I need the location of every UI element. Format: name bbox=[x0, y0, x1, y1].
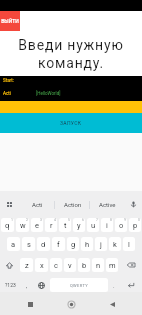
staticText: Active bbox=[99, 201, 116, 208]
button[interactable]: a bbox=[7, 237, 20, 251]
button[interactable]: Period bbox=[109, 278, 119, 292]
staticText: ВЫЙТИ bbox=[1, 18, 19, 24]
staticText: o bbox=[119, 221, 124, 230]
staticText: f bbox=[57, 240, 60, 249]
button[interactable]: Acti bbox=[19, 191, 55, 218]
staticText: ?123 bbox=[5, 282, 16, 288]
staticText: v bbox=[68, 261, 72, 270]
button[interactable]: g bbox=[67, 237, 79, 251]
staticText: ЗАПУСК bbox=[60, 120, 82, 126]
staticText: 4 bbox=[54, 218, 56, 222]
staticText: 0 bbox=[138, 218, 140, 222]
button[interactable]: Home bbox=[60, 293, 82, 315]
staticText: Введи нужную команду. bbox=[14, 37, 128, 72]
staticText: 1 bbox=[11, 218, 13, 222]
staticText: g bbox=[71, 240, 76, 249]
staticText: h bbox=[85, 240, 90, 249]
staticText: p bbox=[133, 221, 138, 230]
button[interactable]: 3 bbox=[31, 218, 43, 232]
staticText: e bbox=[35, 221, 39, 230]
button[interactable]: Action bbox=[55, 191, 90, 218]
staticText: . bbox=[113, 282, 115, 289]
button[interactable]: Switch language bbox=[35, 278, 48, 292]
staticText: 8 bbox=[110, 218, 112, 222]
staticText: 9 bbox=[124, 218, 126, 222]
button[interactable]: 6 bbox=[73, 218, 85, 232]
staticText: t bbox=[64, 221, 67, 230]
button[interactable]: ВЫЙТИ bbox=[0, 11, 20, 31]
staticText: s bbox=[27, 240, 31, 249]
staticText: x bbox=[40, 261, 44, 270]
button[interactable]: 9 bbox=[115, 218, 127, 232]
button[interactable]: d bbox=[37, 237, 50, 251]
staticText: a bbox=[11, 240, 16, 249]
button[interactable]: Apps bbox=[0, 191, 19, 218]
staticText: , bbox=[26, 282, 28, 289]
button[interactable]: 0 bbox=[129, 218, 141, 232]
button[interactable]: h bbox=[81, 237, 93, 251]
staticText: 6 bbox=[82, 218, 84, 222]
button[interactable]: 1 bbox=[1, 218, 14, 232]
button[interactable]: Backspace bbox=[120, 258, 141, 272]
staticText: Acti bbox=[3, 91, 11, 96]
button[interactable]: Back bbox=[101, 293, 123, 315]
staticText: l bbox=[128, 240, 130, 249]
button[interactable]: s bbox=[22, 237, 35, 251]
button[interactable]: Active bbox=[90, 191, 125, 218]
button[interactable]: k bbox=[109, 237, 121, 251]
staticText: Start: bbox=[3, 78, 14, 83]
staticText: b bbox=[82, 261, 87, 270]
staticText: r bbox=[50, 221, 53, 230]
staticText: 5 bbox=[68, 218, 70, 222]
button[interactable]: 2 bbox=[16, 218, 29, 232]
button[interactable]: ЗАПУСК bbox=[0, 113, 142, 133]
button[interactable]: 5 bbox=[59, 218, 71, 232]
button[interactable]: 7 bbox=[87, 218, 99, 232]
button[interactable]: b bbox=[78, 258, 90, 272]
button[interactable]: ?123 bbox=[1, 278, 19, 292]
button[interactable]: Comma bbox=[20, 278, 34, 292]
button[interactable]: QWERTY bbox=[50, 278, 108, 292]
staticText: w bbox=[20, 221, 26, 230]
staticText: Acti bbox=[32, 201, 43, 208]
staticText: [HelloWorld] bbox=[36, 91, 61, 96]
staticText: y bbox=[77, 221, 81, 230]
staticText: j bbox=[100, 240, 102, 249]
staticText: 7 bbox=[96, 218, 98, 222]
staticText: q bbox=[5, 221, 10, 230]
staticText: 2 bbox=[26, 218, 28, 222]
button[interactable]: v bbox=[64, 258, 76, 272]
button[interactable]: n bbox=[92, 258, 104, 272]
staticText: m bbox=[109, 261, 116, 270]
staticText: k bbox=[113, 240, 117, 249]
button[interactable]: c bbox=[50, 258, 62, 272]
button[interactable]: m bbox=[106, 258, 118, 272]
staticText: Action bbox=[64, 201, 82, 208]
button[interactable]: 8 bbox=[101, 218, 113, 232]
staticText: u bbox=[91, 221, 96, 230]
button[interactable]: Recents bbox=[19, 293, 41, 315]
button[interactable]: Shift bbox=[1, 258, 18, 272]
button[interactable]: f bbox=[52, 237, 65, 251]
staticText: d bbox=[41, 240, 46, 249]
button[interactable]: 4 bbox=[45, 218, 57, 232]
staticText: z bbox=[25, 261, 29, 270]
button[interactable]: Voice input bbox=[125, 191, 142, 218]
staticText: i bbox=[106, 221, 108, 230]
button[interactable]: Enter bbox=[120, 278, 141, 292]
staticText: n bbox=[96, 261, 101, 270]
button[interactable]: j bbox=[95, 237, 107, 251]
staticText: c bbox=[54, 261, 58, 270]
button[interactable]: x bbox=[35, 258, 48, 272]
button[interactable]: z bbox=[20, 258, 33, 272]
staticText: QWERTY bbox=[70, 283, 89, 288]
button[interactable]: l bbox=[123, 237, 135, 251]
staticText: 3 bbox=[40, 218, 42, 222]
